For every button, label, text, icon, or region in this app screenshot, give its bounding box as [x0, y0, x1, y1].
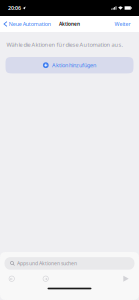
button[interactable]: Neue Automation	[0, 15, 53, 33]
staticText: 20:06	[8, 4, 21, 12]
staticText: Weiter	[114, 20, 130, 28]
button[interactable]: Ausführen	[120, 273, 132, 285]
button[interactable]: Weiter	[112, 15, 139, 33]
staticText: Apps und Aktionen suchen	[17, 260, 77, 267]
button[interactable]: Rückgängig	[6, 273, 18, 285]
button[interactable]: Apps und Aktionen suchen	[4, 257, 134, 270]
staticText: Wähle die Aktionen für diese Automation …	[6, 41, 123, 48]
staticText: Aktionen	[59, 21, 80, 27]
staticText: Neue Automation	[9, 20, 51, 28]
staticText: Aktion hinzufügen	[52, 61, 96, 69]
button[interactable]: Aktion hinzufügen	[5, 57, 133, 73]
button[interactable]: Wiederholen	[40, 273, 52, 285]
